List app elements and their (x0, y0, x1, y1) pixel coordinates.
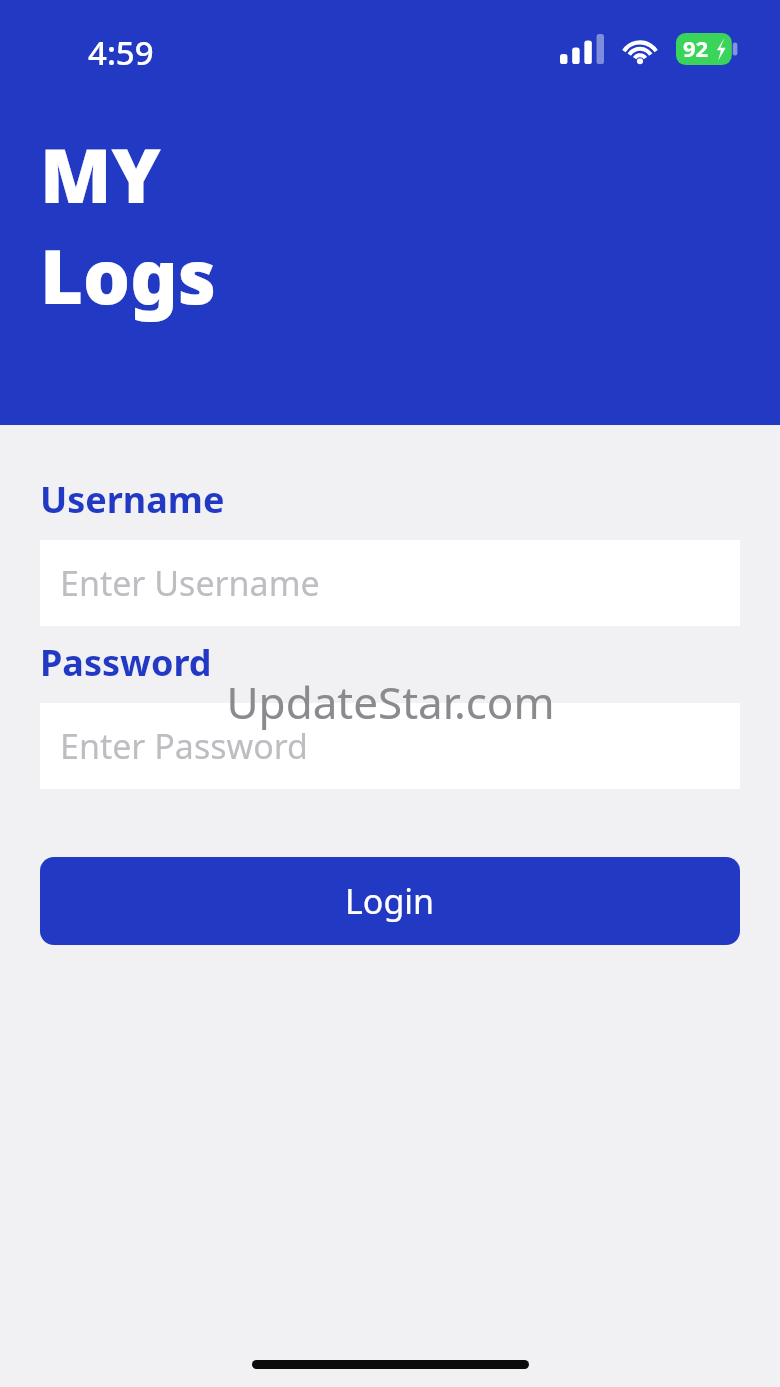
staticText: Password (40, 638, 212, 687)
other: Battery 92 percent charging (676, 33, 738, 65)
staticText: Login (345, 878, 435, 924)
staticText: Username (40, 475, 225, 524)
other: Wi-Fi (620, 34, 660, 64)
staticText: Logs (40, 225, 217, 326)
button[interactable]: Enter Username (40, 540, 740, 626)
other: Cellular signal (560, 34, 604, 64)
staticText: Enter Password (60, 723, 309, 769)
staticText: UpdateStar.com (226, 672, 555, 732)
button[interactable]: Enter Password (40, 703, 740, 789)
staticText: Enter Username (60, 560, 320, 606)
staticText: MY (40, 124, 161, 225)
staticText: 92 (683, 33, 709, 63)
button[interactable]: Login (40, 857, 740, 945)
staticText: 4:59 (88, 30, 154, 75)
